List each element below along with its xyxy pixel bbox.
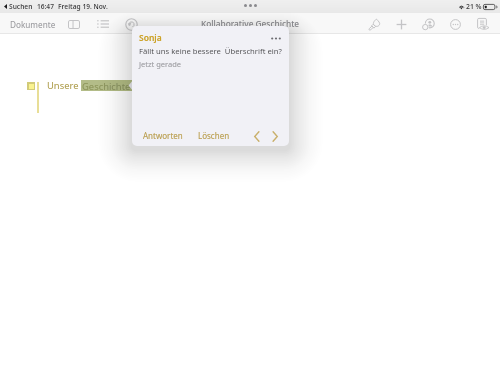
- button[interactable]: Nächster Kommentar: [268, 129, 282, 143]
- button[interactable]: Dokumentoptionen: [473, 15, 491, 33]
- button[interactable]: Kommentarmarkierung: [27, 82, 35, 90]
- staticText: Sonja: [139, 32, 162, 44]
- staticText: Kollaborative Geschichte: [201, 18, 300, 29]
- staticText: Jetzt gerade: [139, 59, 182, 69]
- button[interactable]: Zusammenarbeiten: [419, 15, 437, 33]
- button[interactable]: Listenansicht: [94, 15, 112, 33]
- staticText: Freitag 19. Nov.: [58, 2, 108, 11]
- button[interactable]: Format: [365, 15, 383, 33]
- button[interactable]: Widerrufen: [122, 15, 140, 33]
- staticText: Löschen: [198, 130, 230, 141]
- staticText: Geschichte: [82, 80, 131, 91]
- staticText: 16:47: [37, 2, 54, 11]
- button[interactable]: Antworten: [141, 127, 185, 144]
- button[interactable]: Mehr: [446, 15, 464, 33]
- button[interactable]: Mehr: [268, 33, 284, 44]
- button[interactable]: Dokumentübersicht: [65, 15, 83, 33]
- button[interactable]: Löschen: [196, 127, 232, 144]
- button[interactable]: Dokumente: [6, 16, 60, 33]
- staticText: Antworten: [143, 130, 183, 141]
- staticText: 21 %: [466, 2, 482, 11]
- staticText: Suchen: [9, 2, 33, 11]
- staticText: Dokumente: [10, 19, 56, 30]
- staticText: Unsere: [47, 79, 79, 92]
- staticText: Fällt uns keine bessere Überschrift ein?: [139, 46, 282, 56]
- button[interactable]: Einfügen: [392, 15, 410, 33]
- button[interactable]: Vorheriger Kommentar: [250, 129, 264, 143]
